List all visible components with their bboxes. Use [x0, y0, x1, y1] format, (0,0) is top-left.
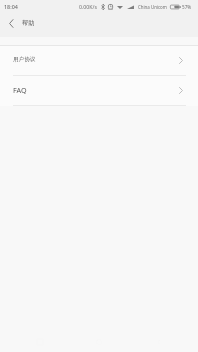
button[interactable]: 用户协议	[0, 46, 198, 75]
staticText: 用户协议	[13, 56, 36, 63]
staticText: FAQ	[13, 85, 27, 95]
button[interactable]: Back	[0, 13, 198, 33]
staticText: 0.00K/s	[79, 3, 97, 10]
staticText: 18:04	[4, 3, 18, 10]
button[interactable]: FAQ	[0, 76, 198, 105]
staticText: China Unicom	[138, 4, 167, 10]
staticText: 57%	[182, 4, 192, 10]
staticText: 帮助	[22, 19, 35, 27]
